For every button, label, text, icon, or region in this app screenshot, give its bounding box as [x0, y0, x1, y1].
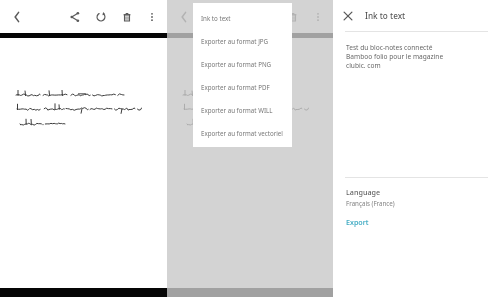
button[interactable]: Close [337, 5, 359, 27]
staticText: Language [346, 187, 381, 197]
button[interactable]: More options [306, 5, 330, 29]
staticText: Exporter au format JPG [201, 37, 269, 45]
staticText: Français (France) [346, 199, 395, 207]
button[interactable]: Language [333, 187, 500, 207]
staticText: Export [346, 217, 369, 227]
staticText: Exporter au format PDF [201, 83, 270, 91]
button[interactable]: Delete [114, 4, 140, 30]
button[interactable]: Exporter au format WILL [193, 98, 292, 121]
staticText: Exporter au format PNG [201, 60, 272, 68]
button[interactable]: Back [171, 4, 197, 30]
button[interactable]: Exporter au format JPG [193, 29, 292, 52]
button[interactable]: Exporter au format vectoriel [193, 121, 292, 144]
button[interactable]: Share [228, 4, 254, 30]
staticText: Exporter au format vectoriel [201, 129, 283, 137]
button[interactable]: Delete [280, 4, 306, 30]
button[interactable]: Share [62, 4, 88, 30]
staticText: Ink to text [365, 10, 406, 21]
button[interactable]: Redo [88, 4, 114, 30]
button[interactable]: Back [4, 4, 30, 30]
button[interactable]: Ink to text [193, 6, 292, 29]
button[interactable]: Exporter au format PDF [193, 75, 292, 98]
button[interactable]: More options [140, 5, 164, 29]
button[interactable]: Export [346, 217, 369, 227]
button[interactable]: Exporter au format PNG [193, 52, 292, 75]
staticText: Ink to text [201, 14, 231, 22]
staticText: Exporter au format WILL [201, 106, 273, 114]
staticText: Test du bloc-notes connecté Bamboo folio… [346, 43, 444, 70]
